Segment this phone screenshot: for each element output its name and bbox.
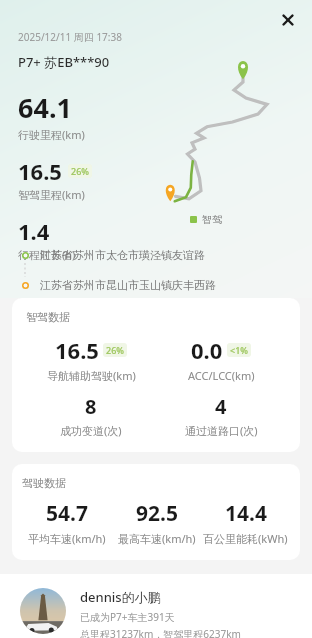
staticText: 通过道路口(次) xyxy=(185,423,258,438)
staticText: 成功变道(次) xyxy=(60,423,122,438)
staticText: 已成为P7+车主391天 xyxy=(80,610,175,624)
staticText: 2025/12/11 周四 17:38 xyxy=(18,30,122,44)
staticText: 最高车速(km/h) xyxy=(118,531,196,546)
staticText: 8 xyxy=(85,393,97,420)
staticText: 江苏省苏州市昆山市玉山镇庆丰西路 xyxy=(40,278,216,292)
staticText: 江苏省苏州市太仓市璜泾镇友谊路 xyxy=(40,248,205,262)
staticText: 驾驶数据 xyxy=(22,476,66,490)
staticText: 92.5 xyxy=(136,499,178,528)
staticText: dennis的小鹏 xyxy=(80,588,161,606)
staticText: 26% xyxy=(106,344,124,356)
staticText: 1.4 xyxy=(18,216,50,246)
staticText: 智驾 xyxy=(202,213,222,226)
staticText: 0.0 xyxy=(191,335,223,365)
button[interactable]: 驾驶数据 xyxy=(12,464,300,560)
staticText: <1% xyxy=(230,344,248,356)
staticText: 智驾里程(km) xyxy=(18,187,85,202)
staticText: P7+ 苏EB***90 xyxy=(18,53,110,71)
button[interactable]: 智驾数据 xyxy=(12,298,300,452)
staticText: 行程时长(h) xyxy=(18,247,76,262)
button[interactable]: dennis的小鹏 xyxy=(0,574,312,638)
staticText: 百公里能耗(kWh) xyxy=(203,531,288,546)
staticText: 54.7 xyxy=(46,499,88,528)
staticText: 总里程31237km，智驾里程6237km xyxy=(80,627,241,638)
staticText: 平均车速(km/h) xyxy=(28,531,106,546)
staticText: 14.4 xyxy=(225,499,267,528)
staticText: 导航辅助驾驶(km) xyxy=(47,368,136,383)
button[interactable]: Close xyxy=(274,6,302,34)
staticText: 64.1 xyxy=(18,89,72,126)
staticText: 4 xyxy=(215,393,227,420)
staticText: 26% xyxy=(71,165,89,177)
staticText: 16.5 xyxy=(18,156,62,186)
staticText: ACC/LCC(km) xyxy=(188,368,255,383)
staticText: 16.5 xyxy=(55,335,99,365)
staticText: 智驾数据 xyxy=(26,310,70,324)
staticText: 行驶里程(km) xyxy=(18,127,85,142)
